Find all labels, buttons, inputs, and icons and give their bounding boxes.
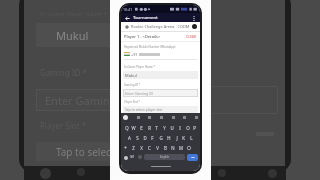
button[interactable]: L (188, 133, 195, 142)
button[interactable]: Q (123, 123, 130, 132)
button[interactable]: Enter Gaming ID (123, 89, 198, 97)
staticText: Gaming ID * (40, 67, 87, 78)
staticText: T (155, 125, 158, 131)
staticText: Tap to select player slot (125, 107, 163, 112)
button[interactable]: M (177, 143, 185, 152)
button[interactable]: V (153, 143, 161, 152)
button[interactable]: Settings (138, 155, 142, 159)
button[interactable]: H (165, 133, 172, 142)
staticText: P (193, 125, 196, 131)
staticText: 10:41 (123, 7, 133, 12)
staticText: Player 1 - <Details> (124, 34, 161, 39)
staticText: D (143, 135, 147, 141)
staticText: M (179, 145, 183, 151)
staticText: Player Slot * (124, 100, 141, 104)
staticText: Gaming ID * (124, 83, 141, 87)
staticText: Z (132, 145, 135, 151)
staticText: O (186, 125, 190, 131)
staticText: B (164, 145, 167, 151)
button[interactable]: T (153, 123, 160, 132)
staticText: G (159, 135, 163, 141)
button[interactable]: C (145, 143, 153, 152)
staticText: +91 (131, 52, 138, 57)
button[interactable]: A (126, 133, 133, 142)
button[interactable]: G (157, 133, 164, 142)
button[interactable]: K (180, 133, 187, 142)
button[interactable]: R (146, 123, 153, 132)
button[interactable]: U (168, 123, 175, 132)
button[interactable]: Back (124, 15, 130, 21)
button[interactable]: D (141, 133, 148, 142)
button[interactable]: I (176, 123, 183, 132)
button[interactable]: Emoji (123, 155, 128, 160)
button[interactable]: P (191, 123, 198, 132)
button[interactable]: More options (191, 15, 197, 21)
staticText: L (190, 135, 193, 141)
staticText: Registered Mobile Number (WhatsApp) (124, 45, 176, 49)
button[interactable]: Backspace (185, 143, 192, 152)
staticText: K (182, 135, 185, 141)
staticText: N (171, 145, 175, 151)
staticText: Tournament (133, 15, 158, 21)
staticText: English (160, 155, 170, 159)
staticText: Player Slot * (40, 120, 87, 131)
staticText: W (131, 125, 136, 131)
staticText: F (151, 135, 154, 141)
staticText: H (167, 135, 171, 141)
staticText: C (148, 145, 151, 151)
button[interactable]: Shift (122, 143, 129, 152)
staticText: Mukul (125, 73, 137, 78)
button[interactable]: O (184, 123, 191, 132)
staticText: X (140, 145, 143, 151)
button[interactable]: Y (161, 123, 168, 132)
staticText: Rookie Challenge Arena CODM (131, 24, 190, 29)
staticText: U (170, 125, 174, 131)
button[interactable]: Enter (187, 154, 198, 161)
button[interactable]: Space (144, 154, 185, 160)
staticText: Enter Gaming ID (125, 91, 154, 96)
staticText: Y (163, 125, 166, 131)
button[interactable]: X (137, 143, 145, 152)
button[interactable]: Tap to select player slot (123, 106, 198, 113)
staticText: J (176, 135, 178, 141)
staticText: Mukul (56, 28, 89, 43)
button[interactable]: Add player (124, 24, 129, 29)
staticText: A (128, 135, 131, 141)
staticText: I (179, 125, 181, 131)
button[interactable]: J (173, 133, 180, 142)
button[interactable]: B (161, 143, 169, 152)
staticText: Q (125, 125, 129, 131)
staticText: Tap to select (56, 145, 115, 159)
staticText: E (140, 125, 143, 131)
button[interactable]: E (138, 123, 145, 132)
button[interactable]: Z (129, 143, 137, 152)
button[interactable]: Mukul (123, 71, 198, 79)
staticText: !#1 (130, 155, 135, 159)
staticText: R (148, 125, 151, 131)
button[interactable]: S (134, 133, 141, 142)
staticText: In-Game Player Name * (124, 65, 156, 69)
button[interactable]: N (169, 143, 177, 152)
staticText: Enter Gamin (45, 93, 110, 108)
button[interactable]: W (130, 123, 137, 132)
staticText: V (156, 145, 159, 151)
button[interactable]: CLEAR (186, 34, 197, 39)
staticText: S (136, 135, 139, 141)
button[interactable]: F (149, 133, 156, 142)
